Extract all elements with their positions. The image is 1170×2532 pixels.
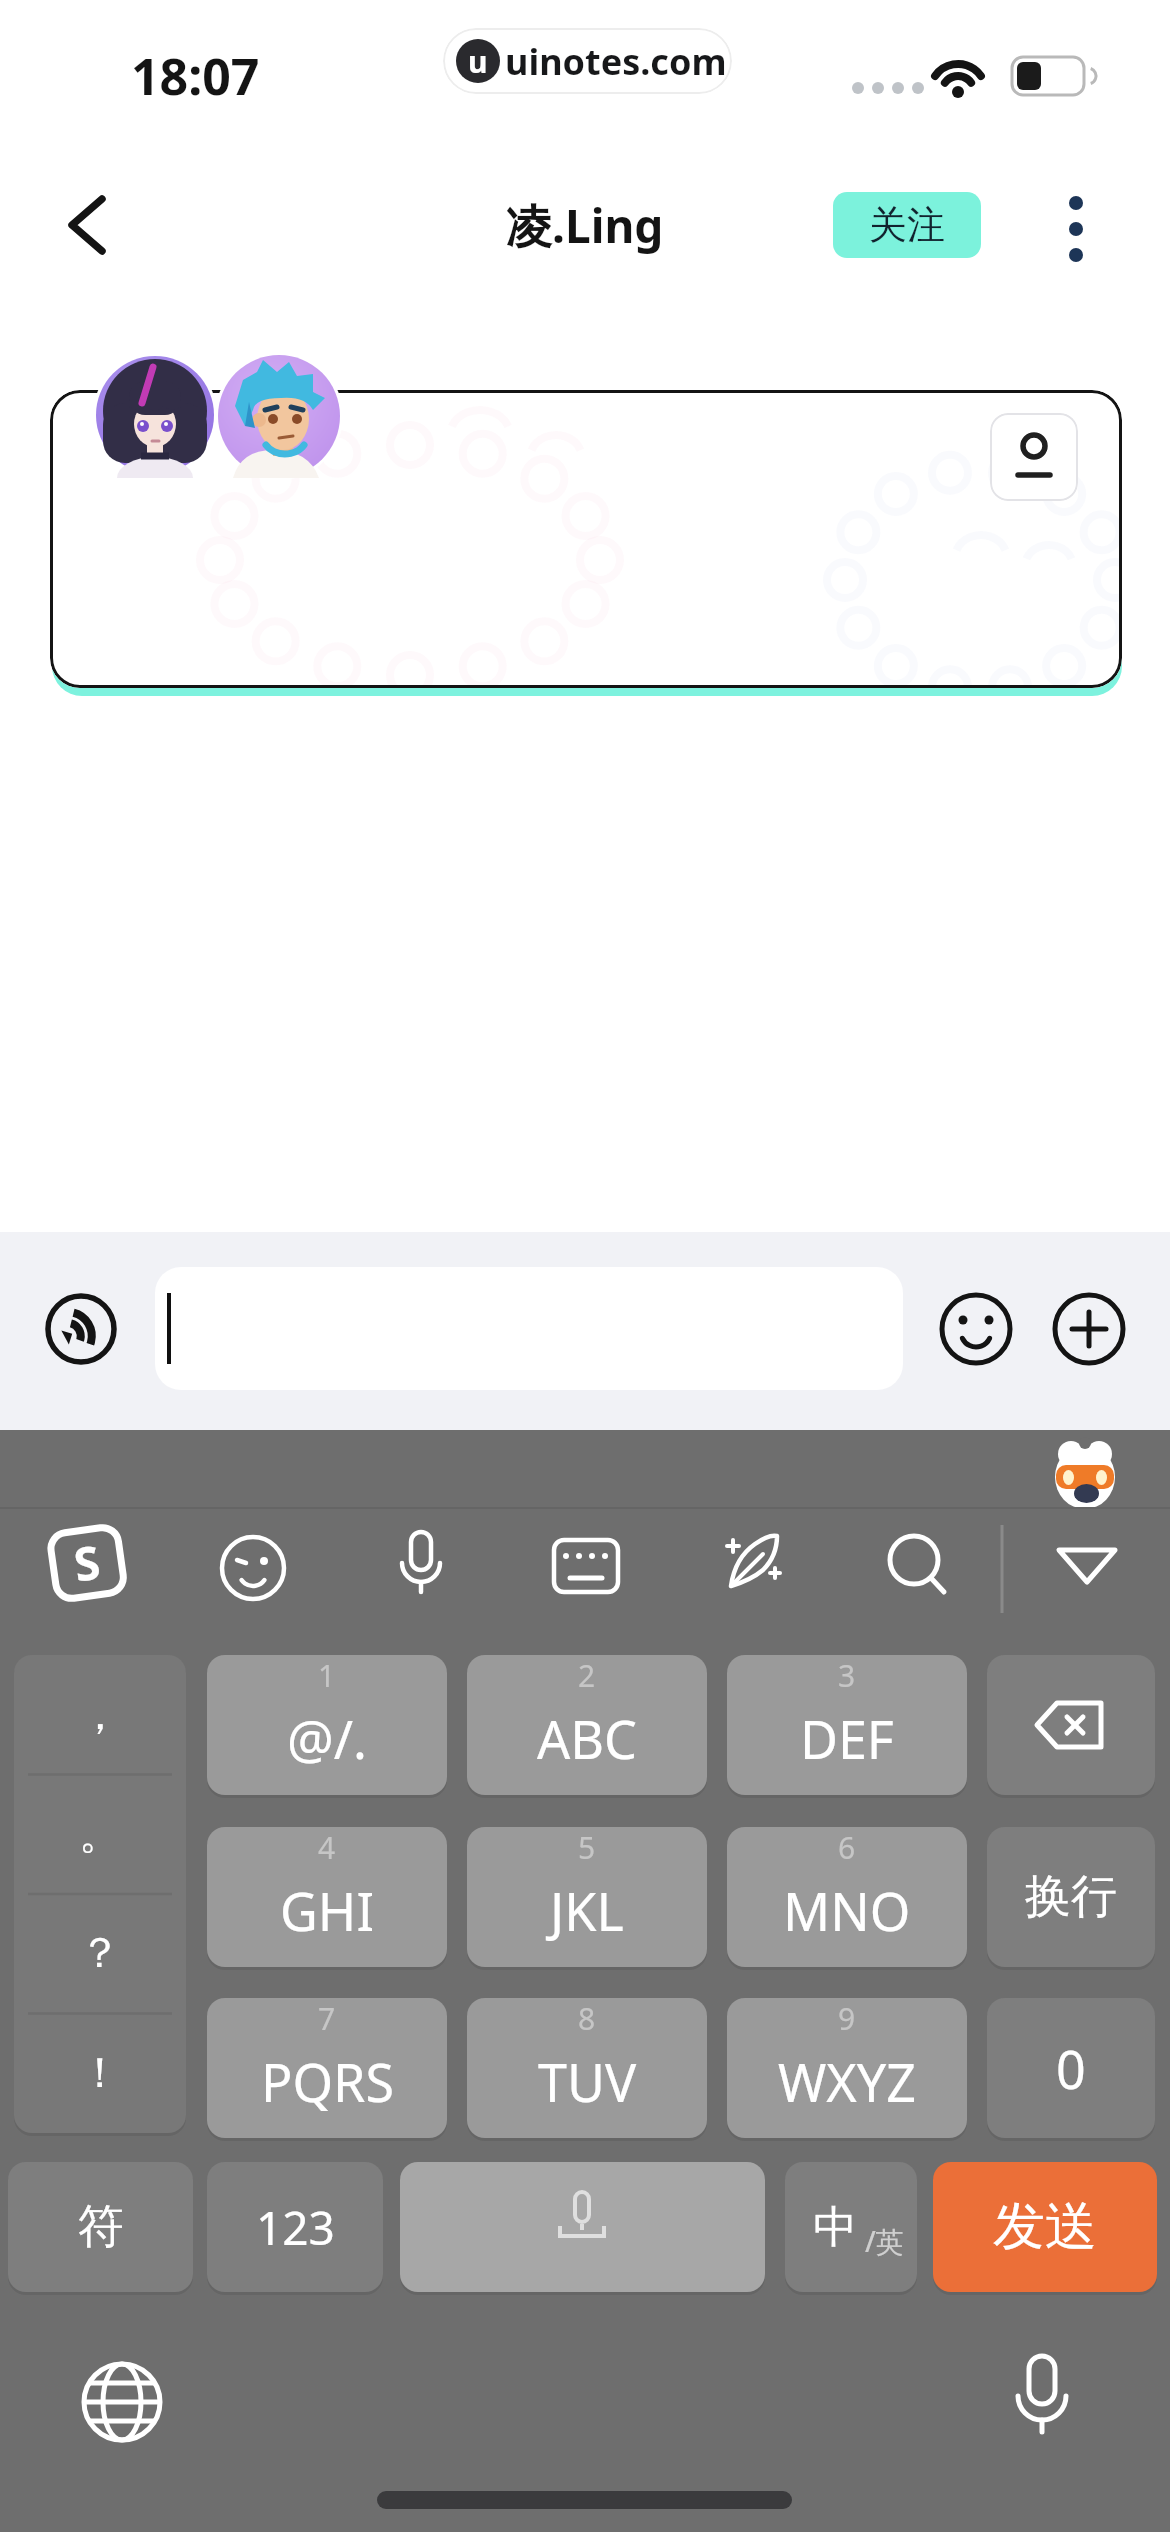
- button[interactable]: [400, 2162, 765, 2292]
- button[interactable]: u: [443, 28, 732, 94]
- staticText: 3: [838, 1655, 856, 1695]
- staticText: 4: [318, 1827, 336, 1867]
- button[interactable]: 9: [727, 1998, 967, 2138]
- button[interactable]: [1053, 1293, 1125, 1365]
- button[interactable]: 5: [467, 1827, 707, 1967]
- button[interactable]: 3: [727, 1655, 967, 1795]
- staticText: 发送: [993, 2194, 1097, 2260]
- button[interactable]: [387, 1528, 455, 1596]
- button[interactable]: 6: [727, 1827, 967, 1967]
- staticText: 6: [838, 1827, 856, 1867]
- staticText: TUV: [538, 2046, 637, 2117]
- button[interactable]: [50, 185, 130, 265]
- staticText: S: [70, 1529, 104, 1595]
- button[interactable]: ，: [14, 1655, 186, 2133]
- staticText: u: [468, 41, 488, 82]
- button[interactable]: [884, 1532, 952, 1600]
- button[interactable]: 符: [8, 2162, 193, 2292]
- button[interactable]: [80, 2360, 164, 2444]
- staticText: 1: [318, 1655, 336, 1695]
- button[interactable]: 关注: [833, 192, 981, 258]
- button[interactable]: 8: [467, 1998, 707, 2138]
- button[interactable]: [719, 1528, 787, 1596]
- button[interactable]: 7: [207, 1998, 447, 2138]
- staticText: 8: [578, 1998, 596, 2038]
- button[interactable]: [990, 413, 1078, 501]
- staticText: 关注: [869, 201, 945, 249]
- button[interactable]: [219, 1534, 287, 1602]
- staticText: PQRS: [261, 2046, 394, 2117]
- button[interactable]: [1047, 1435, 1123, 1511]
- staticText: DEF: [800, 1703, 894, 1774]
- button[interactable]: 中: [785, 2162, 917, 2292]
- staticText: 0: [1056, 2033, 1086, 2104]
- staticText: WXYZ: [778, 2046, 917, 2117]
- button[interactable]: [45, 1293, 117, 1365]
- button[interactable]: [215, 352, 343, 480]
- staticText: uinotes.com: [505, 37, 727, 86]
- staticText: 中: [813, 2200, 857, 2255]
- staticText: /英: [865, 2222, 904, 2260]
- button[interactable]: [50, 390, 1122, 688]
- staticText: ！: [79, 2047, 121, 2100]
- button[interactable]: 0: [987, 1998, 1155, 2138]
- staticText: JKL: [550, 1875, 624, 1946]
- button[interactable]: 1: [207, 1655, 447, 1795]
- button[interactable]: [552, 1534, 620, 1602]
- staticText: 2: [578, 1655, 596, 1695]
- button[interactable]: [1040, 185, 1112, 277]
- staticText: MNO: [783, 1875, 911, 1946]
- button[interactable]: 发送: [933, 2162, 1157, 2292]
- staticText: 123: [256, 2196, 335, 2259]
- staticText: 换行: [1025, 1868, 1117, 1926]
- staticText: ，: [79, 1689, 121, 1742]
- button[interactable]: [155, 1267, 903, 1390]
- button[interactable]: [940, 1293, 1012, 1365]
- staticText: 9: [838, 1998, 856, 2038]
- staticText: 凌.Ling: [506, 194, 664, 257]
- button[interactable]: [93, 353, 217, 477]
- staticText: 。: [79, 1808, 121, 1861]
- staticText: ABC: [537, 1703, 637, 1774]
- button[interactable]: 2: [467, 1655, 707, 1795]
- staticText: @/.: [287, 1703, 368, 1774]
- staticText: 7: [318, 1998, 336, 2038]
- staticText: ？: [79, 1927, 121, 1980]
- button[interactable]: 换行: [987, 1827, 1155, 1967]
- staticText: GHI: [280, 1875, 375, 1946]
- button[interactable]: S: [45, 1520, 129, 1604]
- button[interactable]: [1053, 1538, 1121, 1606]
- staticText: 18:07: [131, 42, 260, 108]
- button[interactable]: [1000, 2352, 1084, 2436]
- staticText: 5: [578, 1827, 596, 1867]
- button[interactable]: 123: [207, 2162, 383, 2292]
- button[interactable]: [987, 1655, 1155, 1795]
- button[interactable]: 4: [207, 1827, 447, 1967]
- staticText: 符: [78, 2198, 124, 2256]
